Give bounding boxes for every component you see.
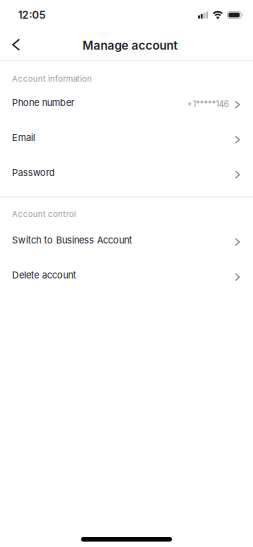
button[interactable]: Back — [0, 30, 32, 60]
staticText: 12:05 — [18, 9, 46, 21]
button[interactable]: Email — [0, 120, 253, 155]
staticText: +1*****146 — [187, 99, 229, 109]
staticText: Password — [12, 167, 55, 178]
staticText: Email — [12, 132, 35, 143]
staticText: Manage account — [82, 38, 177, 53]
button[interactable]: Delete account — [0, 258, 253, 293]
button[interactable]: Phone number — [0, 85, 253, 120]
button[interactable]: Switch to Business Account — [0, 223, 253, 258]
staticText: Account information — [12, 74, 92, 84]
staticText: Account control — [12, 209, 76, 219]
staticText: Switch to Business Account — [12, 234, 132, 246]
button[interactable]: Password — [0, 155, 253, 190]
staticText: Delete account — [12, 269, 76, 281]
staticText: Phone number — [12, 97, 74, 108]
